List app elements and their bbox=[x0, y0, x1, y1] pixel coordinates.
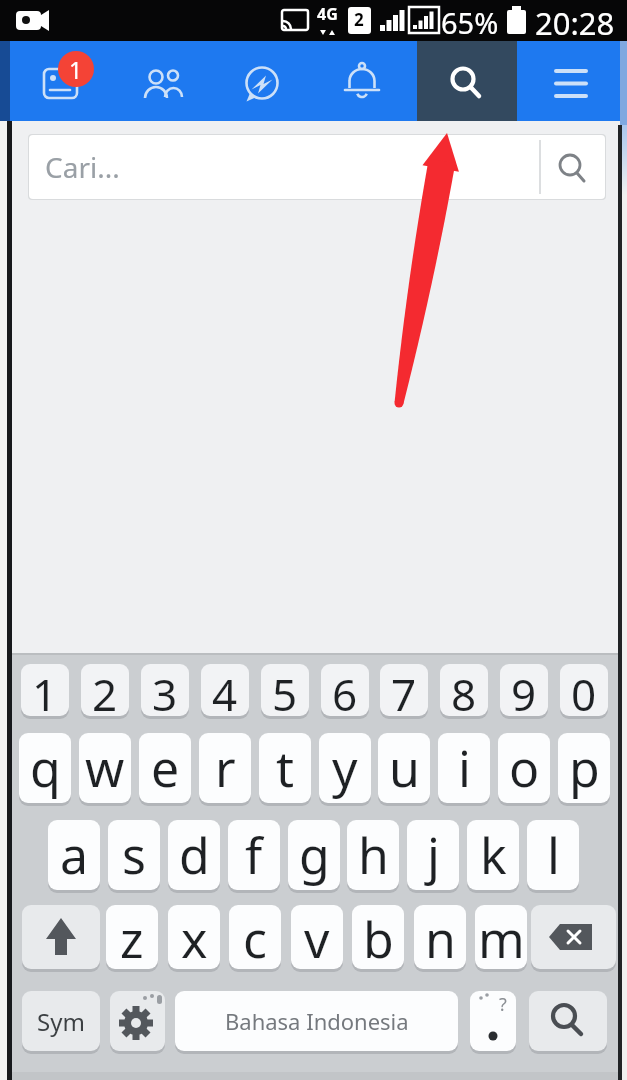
staticText: 65% bbox=[441, 3, 499, 42]
button[interactable]: r bbox=[199, 733, 251, 803]
button[interactable] bbox=[0, 41, 104, 121]
button[interactable]: f bbox=[228, 820, 280, 890]
staticText: m bbox=[478, 905, 525, 969]
staticText: 1 bbox=[69, 54, 83, 85]
button[interactable]: m bbox=[475, 905, 527, 969]
button[interactable]: n bbox=[414, 905, 466, 969]
button[interactable] bbox=[531, 905, 616, 969]
button[interactable]: 9 bbox=[500, 664, 548, 716]
staticText: 20:28 bbox=[535, 2, 615, 44]
button[interactable]: b bbox=[352, 905, 404, 969]
button[interactable]: q bbox=[19, 733, 71, 803]
staticText: c bbox=[243, 905, 267, 969]
staticText: d bbox=[179, 821, 210, 889]
button[interactable] bbox=[470, 991, 516, 1051]
button[interactable] bbox=[417, 41, 517, 121]
staticText: s bbox=[122, 821, 146, 889]
button[interactable]: 7 bbox=[380, 664, 428, 716]
staticText: Bahasa Indonesia bbox=[225, 1006, 409, 1036]
staticText: 9 bbox=[511, 664, 537, 716]
button[interactable]: a bbox=[48, 820, 100, 890]
staticText: 8 bbox=[451, 664, 477, 716]
button[interactable]: i bbox=[438, 733, 490, 803]
button[interactable]: 4 bbox=[201, 664, 249, 716]
button[interactable]: j bbox=[407, 820, 459, 890]
staticText: w bbox=[85, 734, 125, 802]
staticText: 3 bbox=[152, 664, 178, 716]
staticText: Cari... bbox=[45, 148, 120, 186]
button[interactable]: 5 bbox=[261, 664, 309, 716]
staticText: t bbox=[276, 734, 295, 802]
staticText: p bbox=[569, 734, 600, 802]
button[interactable]: o bbox=[498, 733, 550, 803]
button[interactable] bbox=[520, 41, 624, 121]
staticText: x bbox=[181, 905, 208, 969]
staticText: 2 bbox=[92, 664, 118, 716]
button[interactable]: v bbox=[291, 905, 343, 969]
button[interactable]: s bbox=[108, 820, 160, 890]
button[interactable]: u bbox=[378, 733, 430, 803]
staticText: l bbox=[547, 821, 560, 889]
button[interactable] bbox=[312, 41, 416, 121]
button[interactable]: z bbox=[106, 905, 158, 969]
staticText: 4 bbox=[212, 664, 238, 716]
button[interactable]: d bbox=[168, 820, 220, 890]
staticText: 0 bbox=[571, 664, 597, 716]
staticText: 4G bbox=[317, 3, 338, 25]
staticText: 2 bbox=[354, 8, 364, 31]
button[interactable] bbox=[110, 991, 165, 1051]
staticText: o bbox=[509, 734, 540, 802]
button[interactable]: c bbox=[229, 905, 281, 969]
staticText: h bbox=[358, 821, 389, 889]
button[interactable]: g bbox=[288, 820, 340, 890]
staticText: r bbox=[215, 734, 236, 802]
button[interactable]: 8 bbox=[440, 664, 488, 716]
button[interactable]: t bbox=[259, 733, 311, 803]
staticText: z bbox=[120, 905, 144, 969]
button[interactable]: p bbox=[558, 733, 610, 803]
staticText: Sym bbox=[37, 1005, 85, 1038]
button[interactable]: e bbox=[139, 733, 191, 803]
button[interactable] bbox=[208, 41, 312, 121]
button[interactable]: 3 bbox=[141, 664, 189, 716]
staticText: q bbox=[30, 734, 61, 802]
staticText: j bbox=[427, 821, 440, 889]
staticText: 7 bbox=[391, 664, 417, 716]
staticText: a bbox=[60, 821, 89, 889]
button[interactable]: 0 bbox=[560, 664, 608, 716]
staticText: 5 bbox=[272, 664, 298, 716]
staticText: ? bbox=[499, 992, 507, 1017]
staticText: f bbox=[245, 821, 263, 889]
button[interactable]: Bahasa Indonesia bbox=[175, 991, 458, 1051]
button[interactable]: w bbox=[79, 733, 131, 803]
button[interactable]: x bbox=[168, 905, 220, 969]
staticText: 1 bbox=[32, 664, 58, 716]
button[interactable]: Cari... bbox=[29, 135, 605, 199]
staticText: u bbox=[389, 734, 420, 802]
staticText: k bbox=[480, 821, 507, 889]
button[interactable]: 1 bbox=[21, 664, 69, 716]
staticText: i bbox=[458, 734, 471, 802]
button[interactable]: h bbox=[347, 820, 399, 890]
staticText: b bbox=[363, 905, 394, 969]
button[interactable]: Sym bbox=[22, 991, 100, 1051]
staticText: 6 bbox=[332, 664, 358, 716]
button[interactable] bbox=[22, 905, 100, 969]
button[interactable]: k bbox=[467, 820, 519, 890]
button[interactable]: y bbox=[319, 733, 371, 803]
button[interactable] bbox=[529, 991, 607, 1051]
button[interactable] bbox=[104, 41, 208, 121]
staticText: e bbox=[151, 734, 180, 802]
staticText: y bbox=[332, 734, 358, 802]
staticText: g bbox=[299, 821, 330, 889]
staticText: v bbox=[304, 905, 330, 969]
button[interactable]: l bbox=[527, 820, 579, 890]
button[interactable]: 6 bbox=[321, 664, 369, 716]
staticText: n bbox=[425, 905, 456, 969]
button[interactable]: 2 bbox=[81, 664, 129, 716]
